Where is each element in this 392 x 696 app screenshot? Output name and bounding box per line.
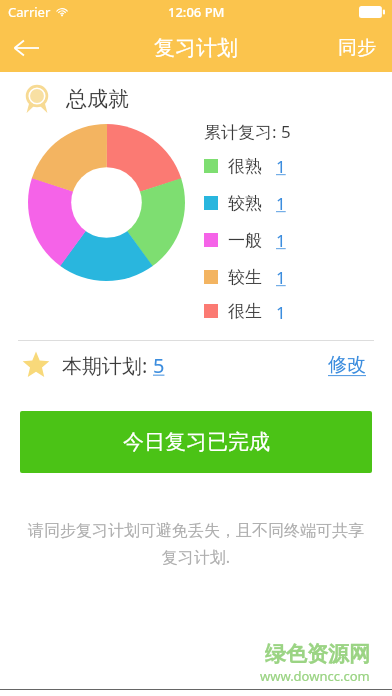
- staticText: 累计复习: 5: [204, 120, 291, 143]
- staticText: www.downcc.com: [260, 667, 370, 685]
- staticText: 1: [276, 192, 286, 215]
- staticText: 1: [276, 155, 286, 178]
- button[interactable]: 修改: [324, 349, 370, 381]
- button[interactable]: 5: [153, 352, 165, 379]
- staticText: 1: [276, 266, 286, 289]
- staticText: 同步: [338, 36, 376, 60]
- staticText: 较生: [228, 267, 262, 288]
- staticText: 总成就: [66, 86, 129, 112]
- staticText: 今日复习已完成: [123, 429, 270, 455]
- staticText: 很生: [228, 301, 262, 320]
- staticText: 很熟: [228, 156, 262, 177]
- staticText: 绿色资源网: [265, 641, 370, 667]
- button[interactable]: 一般: [204, 227, 334, 253]
- staticText: 修改: [328, 353, 366, 377]
- staticText: 1: [276, 301, 286, 320]
- staticText: 5: [153, 352, 165, 379]
- staticText: 复习计划: [154, 35, 238, 61]
- staticText: 一般: [228, 230, 262, 251]
- staticText: 12:06 PM: [168, 3, 225, 21]
- button[interactable]: 同步: [322, 26, 392, 70]
- staticText: Carrier: [8, 3, 51, 21]
- button[interactable]: 很熟: [204, 153, 334, 179]
- button[interactable]: 今日复习已完成: [20, 411, 372, 473]
- staticText: 1: [276, 229, 286, 252]
- button[interactable]: 很生: [204, 301, 334, 320]
- button[interactable]: 较熟: [204, 190, 334, 216]
- button[interactable]: Back: [0, 24, 52, 72]
- staticText: 本期计划:: [62, 352, 153, 379]
- button[interactable]: 较生: [204, 264, 334, 290]
- staticText: 请同步复习计划可避免丢失，且不同终端可共享复习计划.: [24, 521, 368, 568]
- staticText: 较熟: [228, 193, 262, 214]
